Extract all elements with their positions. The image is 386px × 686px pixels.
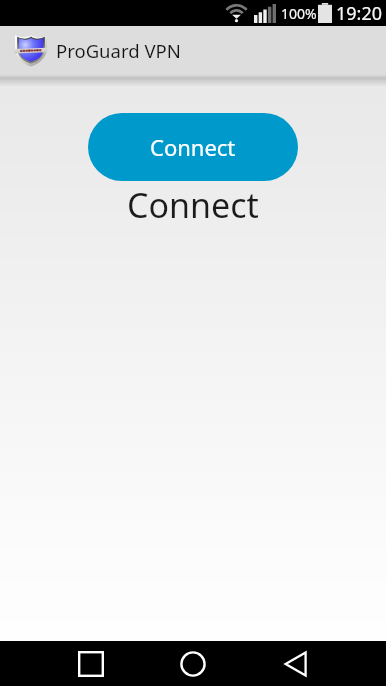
staticText: Connect <box>150 132 236 162</box>
staticText: 19:20 <box>336 1 383 26</box>
staticText: Connect <box>127 182 259 228</box>
staticText: 100% <box>281 4 317 23</box>
staticText: ProGuard VPN <box>56 38 181 63</box>
button[interactable]: Home <box>166 641 220 686</box>
button[interactable]: Connect <box>88 113 298 181</box>
button[interactable]: Back <box>268 641 322 686</box>
button[interactable]: Recent apps <box>64 641 118 686</box>
